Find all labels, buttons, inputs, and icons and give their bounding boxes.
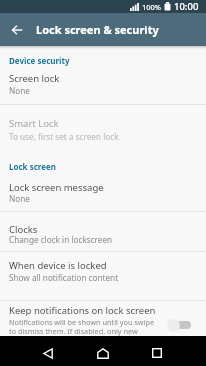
button[interactable]: [0, 13, 34, 46]
staticText: Notifications will be shown until you sw…: [9, 317, 155, 336]
button[interactable]: [142, 336, 172, 366]
button[interactable]: [33, 336, 63, 366]
staticText: Change clock in lockscreen: [9, 234, 113, 245]
button[interactable]: Lock screen message: [0, 176, 206, 211]
staticText: Device security: [9, 55, 70, 66]
button[interactable]: Clocks: [0, 212, 206, 251]
staticText: Lock screen & security: [36, 22, 159, 37]
staticText: Smart Lock: [9, 117, 59, 130]
staticText: Show all notification content: [9, 272, 119, 283]
staticText: Clocks: [9, 223, 38, 236]
staticText: None: [9, 85, 30, 96]
staticText: 10:00: [174, 0, 199, 13]
staticText: When device is locked: [9, 259, 107, 272]
button[interactable]: [88, 336, 118, 366]
staticText: Screen lock: [9, 72, 60, 85]
button[interactable]: When device is locked: [0, 252, 206, 300]
staticText: None: [9, 193, 30, 204]
staticText: 100%: [142, 2, 162, 12]
staticText: To use, first set a screen lock: [9, 131, 119, 142]
staticText: Lock screen: [9, 161, 56, 172]
button[interactable]: Screen lock: [0, 68, 206, 104]
staticText: Keep notifications on lock screen: [9, 304, 156, 317]
button[interactable]: Keep notifications on lock screen: [0, 301, 206, 336]
staticText: Lock screen message: [9, 181, 104, 194]
